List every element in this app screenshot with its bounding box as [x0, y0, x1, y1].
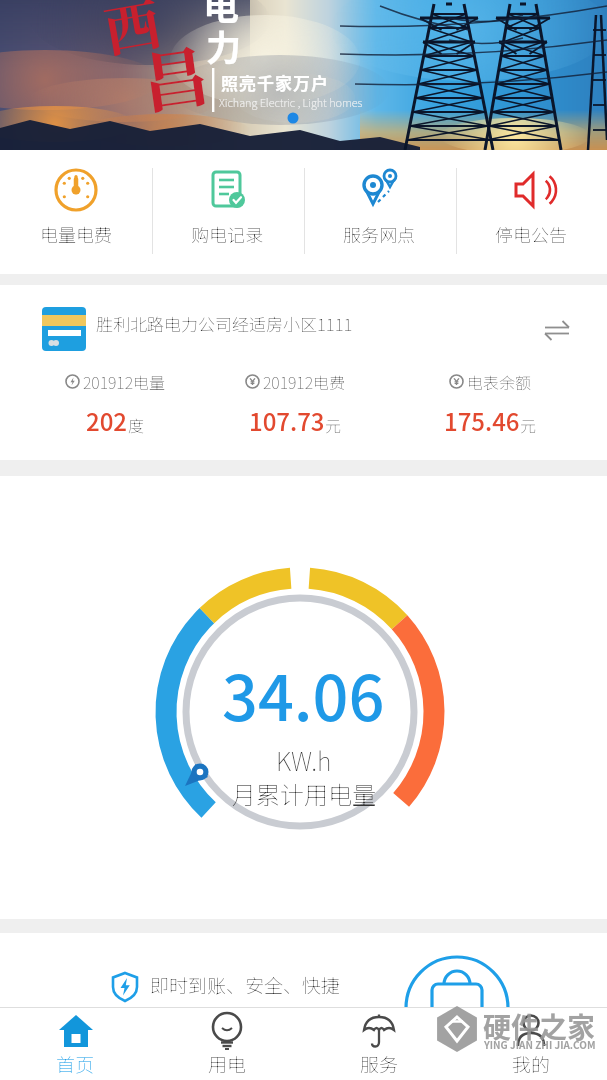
- staticText: 照亮千家万户: [221, 70, 329, 95]
- button[interactable]: 购电记录: [151, 150, 303, 274]
- staticText: 175.46: [444, 403, 520, 438]
- button[interactable]: 我的: [455, 1008, 607, 1080]
- button[interactable]: 201912电费: [215, 370, 375, 438]
- staticText: 107.73: [249, 403, 325, 438]
- staticText: 201912电费: [263, 370, 346, 393]
- button[interactable]: 服务: [303, 1008, 455, 1080]
- staticText: 即时到账、安全、快捷: [150, 971, 341, 999]
- staticText: 首页: [56, 1050, 95, 1078]
- staticText: 34.06: [222, 648, 385, 739]
- staticText: 服务: [360, 1050, 399, 1078]
- button[interactable]: 电表余额: [415, 370, 565, 438]
- staticText: 元: [520, 413, 537, 436]
- staticText: 度: [128, 413, 145, 436]
- staticText: 我的: [512, 1050, 551, 1078]
- staticText: YING JIAN ZHI JIA.COM: [484, 1037, 596, 1051]
- staticText: 月累计用电量: [232, 776, 376, 811]
- staticText: KW.h: [276, 742, 332, 778]
- staticText: 停电公告: [495, 221, 567, 247]
- staticText: 购电记录: [191, 221, 263, 247]
- staticText: 昌: [136, 24, 214, 127]
- button[interactable]: 用电: [151, 1008, 303, 1080]
- button[interactable]: 电: [0, 0, 607, 150]
- button[interactable]: 首页: [0, 1008, 151, 1080]
- button[interactable]: 电量电费: [0, 150, 151, 274]
- staticText: 用电: [208, 1050, 247, 1078]
- button[interactable]: 即时到账、安全、快捷: [0, 933, 607, 1007]
- staticText: 硬件之家: [483, 1006, 596, 1047]
- staticText: 201912电量: [83, 370, 166, 393]
- staticText: 电表余额: [467, 370, 532, 393]
- staticText: 力: [206, 20, 242, 71]
- staticText: 服务网点: [343, 221, 415, 247]
- staticText: 电量电费: [40, 221, 112, 247]
- button[interactable]: 201912电量: [40, 370, 190, 438]
- staticText: 元: [325, 413, 342, 436]
- button[interactable]: 胜利北路电力公司经适房小区1111: [0, 285, 607, 365]
- button[interactable]: 停电公告: [455, 150, 607, 274]
- button[interactable]: 服务网点: [303, 150, 455, 274]
- staticText: 202: [86, 403, 128, 438]
- staticText: 西: [97, 0, 166, 68]
- staticText: 电: [203, 0, 240, 30]
- staticText: Xichang Electric , Light homes: [219, 94, 363, 110]
- staticText: 胜利北路电力公司经适房小区1111: [96, 311, 353, 336]
